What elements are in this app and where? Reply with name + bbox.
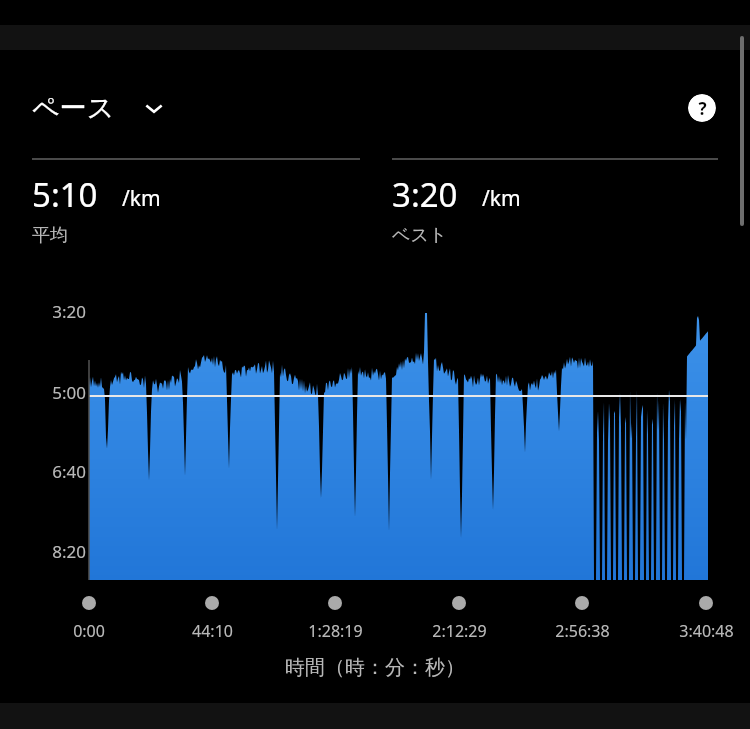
staticText: /km — [482, 184, 521, 213]
staticText: /km — [122, 184, 161, 213]
button[interactable]: ペース — [24, 84, 174, 132]
staticText: ? — [698, 97, 707, 120]
staticText: 5:10 — [32, 172, 98, 217]
button[interactable]: Help — [688, 94, 716, 122]
staticText: ペース — [32, 91, 115, 125]
staticText: 3:20 — [52, 300, 86, 323]
button[interactable]: 3:20 — [392, 172, 722, 254]
staticText: 3:20 — [392, 172, 458, 217]
staticText: 0:00 — [73, 620, 105, 642]
staticText: 5:00 — [52, 381, 86, 404]
staticText: 時間（時：分：秒） — [285, 655, 465, 680]
staticText: 8:20 — [52, 540, 86, 563]
staticText: 2:12:29 — [432, 620, 487, 642]
staticText: ベスト — [392, 224, 448, 247]
staticText: 1:28:19 — [308, 620, 363, 642]
button[interactable]: 5:10 — [32, 172, 362, 254]
staticText: 3:40:48 — [679, 620, 734, 642]
staticText: 44:10 — [192, 620, 233, 642]
staticText: 2:56:38 — [555, 620, 610, 642]
staticText: 6:40 — [52, 460, 86, 483]
staticText: 平均 — [32, 224, 68, 247]
